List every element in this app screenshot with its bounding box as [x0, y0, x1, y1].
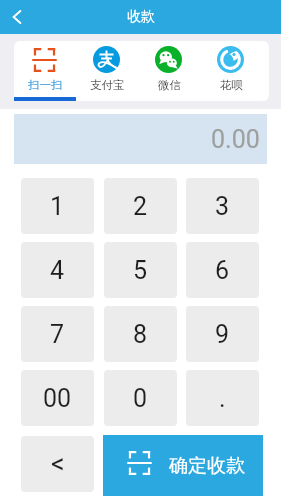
- staticText: 3: [215, 192, 230, 221]
- staticText: 6: [215, 256, 230, 285]
- staticText: 支付宝: [90, 78, 125, 92]
- staticText: 4: [50, 256, 65, 285]
- button[interactable]: .: [186, 370, 259, 426]
- staticText: 1: [50, 192, 65, 221]
- button[interactable]: 00: [21, 370, 94, 426]
- button[interactable]: 3: [186, 178, 259, 234]
- staticText: 确定收款: [169, 454, 245, 478]
- button[interactable]: 6: [186, 242, 259, 298]
- staticText: 5: [133, 256, 148, 285]
- button[interactable]: Backspace: [21, 436, 94, 492]
- button[interactable]: 0: [104, 370, 177, 426]
- button[interactable]: 确定收款: [103, 435, 263, 496]
- staticText: <: [51, 448, 65, 480]
- button[interactable]: 微信: [138, 41, 200, 101]
- staticText: .: [219, 384, 226, 413]
- button[interactable]: 9: [186, 306, 259, 362]
- staticText: 0: [133, 384, 148, 413]
- button[interactable]: 2: [104, 178, 177, 234]
- staticText: 0.00: [211, 125, 260, 154]
- staticText: 花呗: [220, 78, 243, 92]
- staticText: 2: [133, 192, 148, 221]
- staticText: 8: [133, 320, 148, 349]
- button[interactable]: 8: [104, 306, 177, 362]
- button[interactable]: 1: [21, 178, 94, 234]
- staticText: 00: [43, 384, 72, 413]
- button[interactable]: 4: [21, 242, 94, 298]
- button[interactable]: Back: [0, 0, 34, 34]
- button[interactable]: 花呗: [200, 41, 262, 101]
- button[interactable]: 7: [21, 306, 94, 362]
- button[interactable]: 支付宝: [76, 41, 138, 101]
- staticText: 9: [215, 320, 230, 349]
- staticText: 扫一扫: [28, 78, 63, 92]
- button[interactable]: 扫一扫: [14, 41, 76, 101]
- button[interactable]: 5: [104, 242, 177, 298]
- staticText: 收款: [127, 8, 155, 26]
- staticText: 微信: [158, 78, 181, 92]
- staticText: 7: [50, 320, 65, 349]
